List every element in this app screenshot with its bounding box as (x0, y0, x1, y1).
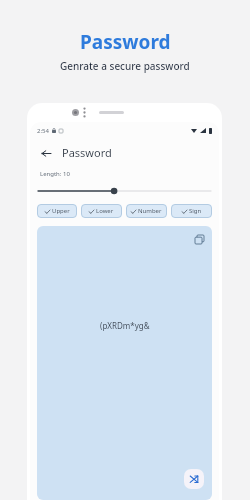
button[interactable]: Copy password (192, 232, 206, 246)
button[interactable]: Upper (37, 204, 77, 218)
button[interactable]: Sign (171, 204, 212, 218)
staticText: Password (62, 145, 112, 160)
staticText: Genrate a secure password (60, 59, 190, 73)
button[interactable]: Back (39, 146, 53, 160)
staticText: Length: 10 (40, 170, 70, 178)
staticText: Lower (96, 207, 114, 215)
button[interactable]: Generate password (184, 469, 204, 489)
staticText: Sign (189, 207, 202, 215)
staticText: (pXRDm*yg& (100, 320, 150, 331)
button[interactable]: Number (126, 204, 167, 218)
staticText: Password (80, 29, 171, 55)
button[interactable]: Lower (81, 204, 122, 218)
staticText: Upper (52, 207, 70, 215)
staticText: Number (138, 207, 162, 215)
staticText: 2:54 (37, 127, 49, 135)
button[interactable]: Back (39, 139, 210, 166)
button[interactable]: Length slider (38, 184, 211, 198)
